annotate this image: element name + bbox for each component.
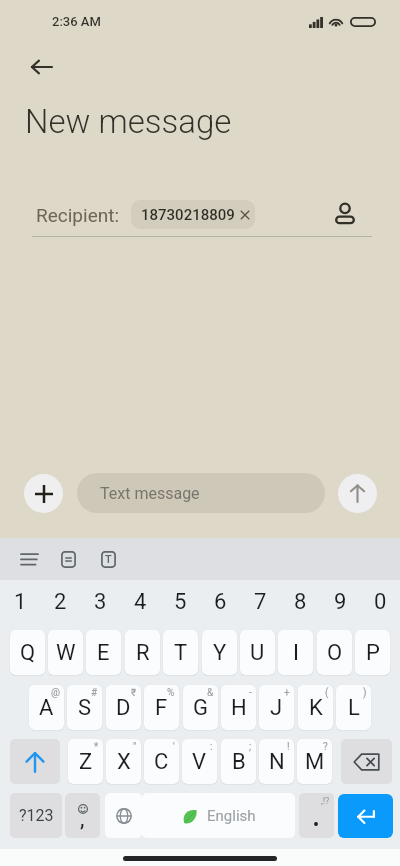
button[interactable]: Text message — [77, 473, 325, 513]
staticText: # — [91, 687, 98, 699]
staticText: C — [154, 749, 169, 775]
button[interactable]: 0 — [360, 585, 400, 618]
button[interactable]: X — [106, 739, 141, 784]
staticText: ( — [325, 687, 329, 699]
staticText: 9 — [334, 589, 347, 615]
button[interactable]: 6 — [200, 585, 240, 618]
button[interactable]: Y — [202, 630, 237, 675]
button[interactable]: 4 — [120, 585, 160, 618]
staticText: B — [232, 749, 246, 775]
button[interactable]: 3 — [80, 585, 120, 618]
staticText: S — [78, 695, 92, 721]
button[interactable]: Choose contact — [325, 194, 365, 234]
staticText: : — [210, 741, 213, 753]
staticText: * — [94, 741, 99, 753]
staticText: ; — [249, 741, 252, 753]
staticText: N — [269, 749, 285, 775]
staticText: D — [116, 695, 131, 721]
button[interactable]: Clipboard — [53, 544, 83, 574]
button[interactable]: More options — [14, 546, 44, 573]
staticText: , — [80, 807, 85, 830]
staticText: @ — [51, 687, 60, 699]
button[interactable]: V — [182, 739, 217, 784]
staticText: X — [117, 749, 131, 775]
button[interactable]: 8 — [280, 585, 320, 618]
button[interactable]: Period — [299, 793, 334, 838]
staticText: ?123 — [19, 806, 54, 825]
staticText: % — [167, 687, 175, 699]
staticText: Q — [20, 640, 36, 666]
staticText: Text message — [100, 484, 200, 503]
staticText: O — [327, 640, 343, 666]
staticText: 7 — [254, 589, 267, 615]
staticText: ) — [363, 687, 367, 699]
button[interactable]: Backspace — [341, 739, 392, 784]
button[interactable]: L — [336, 685, 371, 730]
button[interactable]: K — [298, 685, 333, 730]
button[interactable]: B — [221, 739, 256, 784]
button[interactable]: Emoji — [65, 793, 100, 838]
button[interactable]: J — [259, 685, 294, 730]
button[interactable]: P — [355, 630, 390, 675]
staticText: 2 — [54, 589, 67, 615]
button[interactable]: R — [125, 630, 160, 675]
button[interactable]: E — [86, 630, 121, 675]
button[interactable]: Enter — [338, 794, 393, 838]
button[interactable]: ?123 — [10, 793, 62, 838]
button[interactable]: C — [144, 739, 179, 784]
button[interactable]: Text formatting — [93, 544, 123, 574]
staticText: I — [293, 640, 299, 666]
staticText: W — [56, 640, 76, 666]
staticText: R — [136, 640, 150, 666]
button[interactable]: Add attachment — [24, 474, 63, 513]
staticText: E — [97, 640, 110, 666]
staticText: J — [270, 695, 283, 721]
button[interactable]: Switch language — [105, 793, 142, 838]
staticText: ? — [323, 741, 328, 753]
button[interactable]: U — [240, 630, 275, 675]
staticText: A — [39, 695, 54, 721]
button[interactable]: M — [297, 739, 332, 784]
staticText: 8 — [294, 589, 307, 615]
button[interactable]: Q — [10, 630, 45, 675]
button[interactable]: Back — [19, 49, 64, 84]
staticText: U — [250, 640, 265, 666]
button[interactable]: G — [183, 685, 218, 730]
button[interactable]: 7 — [240, 585, 280, 618]
button[interactable]: O — [317, 630, 352, 675]
button[interactable]: H — [221, 685, 256, 730]
button[interactable]: Z — [68, 739, 103, 784]
staticText: M — [305, 749, 325, 775]
staticText: New message — [25, 102, 232, 141]
staticText: 0 — [374, 589, 387, 615]
button[interactable]: W — [48, 630, 83, 675]
button[interactable]: 18730218809 — [131, 200, 255, 229]
staticText: 4 — [134, 589, 147, 615]
staticText: F — [155, 695, 168, 721]
button[interactable]: A — [29, 685, 64, 730]
staticText: Y — [213, 640, 227, 666]
button[interactable]: 2 — [40, 585, 80, 618]
staticText: P — [366, 640, 380, 666]
staticText: & — [207, 687, 214, 699]
staticText: Z — [79, 749, 93, 775]
button[interactable]: 1 — [0, 585, 40, 618]
staticText: ' — [173, 741, 175, 753]
staticText: - — [249, 687, 252, 699]
staticText: 6 — [214, 589, 227, 615]
button[interactable]: I — [278, 630, 313, 675]
button[interactable]: N — [259, 739, 294, 784]
button[interactable]: Shift — [10, 739, 60, 784]
staticText: " — [133, 741, 137, 753]
staticText: V — [192, 749, 207, 775]
button[interactable]: 5 — [160, 585, 200, 618]
button[interactable]: S — [67, 685, 102, 730]
button[interactable]: Send — [338, 474, 377, 513]
button[interactable]: F — [144, 685, 179, 730]
button[interactable]: T — [163, 630, 198, 675]
button[interactable]: D — [106, 685, 141, 730]
staticText: K — [309, 695, 323, 721]
button[interactable]: 9 — [320, 585, 360, 618]
staticText: 5 — [174, 589, 187, 615]
button[interactable]: English — [142, 793, 295, 838]
